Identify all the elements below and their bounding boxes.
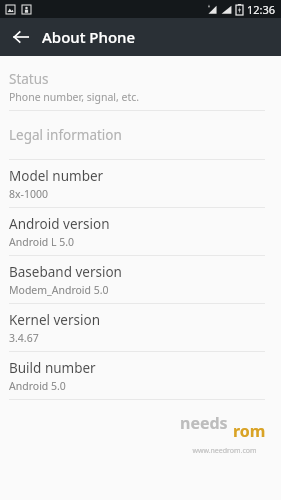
staticText: Phone number, signal, etc. <box>9 90 140 104</box>
staticText: Modem_Android 5.0 <box>9 283 109 297</box>
staticText: 12:36 <box>247 2 276 17</box>
staticText: www.needrom.com <box>192 446 257 456</box>
staticText: 8x-1000 <box>9 187 48 201</box>
button[interactable]: Back <box>8 24 34 50</box>
staticText: Model number <box>9 167 104 185</box>
staticText: Android 5.0 <box>9 379 66 393</box>
button[interactable]: Kernel version <box>0 304 281 351</box>
staticText: Status <box>9 70 49 88</box>
staticText: Baseband version <box>9 263 122 281</box>
button[interactable]: Baseband version <box>0 256 281 303</box>
staticText: Android version <box>9 215 110 233</box>
button[interactable]: Android version <box>0 208 281 255</box>
button[interactable]: Model number <box>0 160 281 207</box>
button[interactable]: Legal information <box>0 111 281 159</box>
staticText: rom <box>233 420 266 442</box>
button[interactable]: Build number <box>0 352 281 399</box>
staticText: 3.4.67 <box>9 331 39 345</box>
staticText: Android L 5.0 <box>9 235 75 249</box>
staticText: Legal information <box>9 126 122 144</box>
button[interactable]: Status <box>0 63 281 110</box>
staticText: Build number <box>9 359 96 377</box>
staticText: needs <box>180 412 228 434</box>
staticText: Kernel version <box>9 311 101 329</box>
staticText: About Phone <box>42 27 136 47</box>
